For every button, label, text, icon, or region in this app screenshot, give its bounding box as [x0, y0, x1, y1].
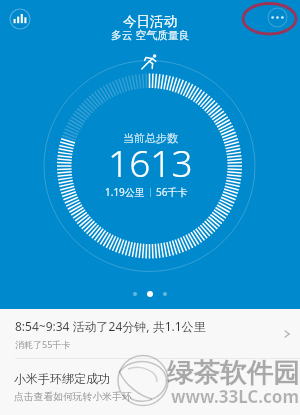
- staticText: 多云 空气质量良: [111, 27, 190, 42]
- staticText: 点击查看如何玩转小米手环: [14, 391, 132, 403]
- staticText: 今日活动: [123, 13, 177, 30]
- button[interactable]: Statistics: [9, 8, 31, 30]
- staticText: 当前总步数: [123, 131, 178, 145]
- staticText: 1613: [108, 137, 193, 187]
- staticText: 小米手环绑定成功: [14, 371, 110, 386]
- button[interactable]: 小米手环绑定成功: [0, 359, 300, 415]
- button[interactable]: 8:54~9:34 活动了24分钟, 共1.1公里: [0, 309, 300, 358]
- staticText: 消耗了55千卡: [15, 338, 71, 350]
- other: Open details: [274, 321, 300, 347]
- button[interactable]: More options: [267, 7, 288, 28]
- staticText: www.33LC.com: [171, 385, 300, 408]
- staticText: 绿茶软件园: [167, 356, 300, 389]
- staticText: 56千卡: [156, 185, 188, 199]
- staticText: 1.19公里: [105, 185, 145, 199]
- staticText: 8:54~9:34 活动了24分钟, 共1.1公里: [15, 318, 206, 334]
